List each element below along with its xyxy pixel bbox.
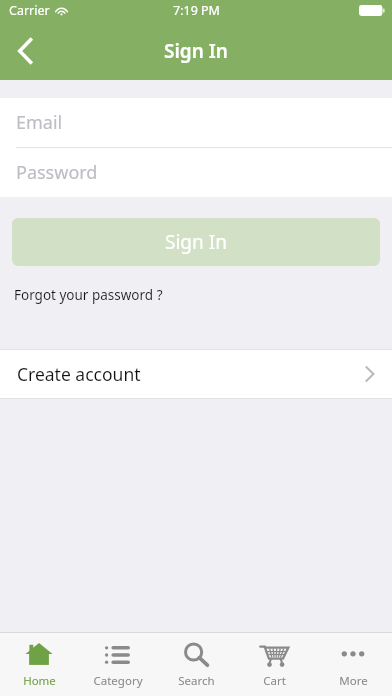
button[interactable]: More <box>314 633 392 696</box>
button[interactable]: Cart <box>235 633 313 696</box>
button[interactable]: Create account <box>0 350 392 398</box>
button[interactable]: Home <box>0 633 78 696</box>
button[interactable]: Back <box>0 21 50 80</box>
staticText: Carrier <box>9 2 50 19</box>
staticText: Category <box>93 673 143 689</box>
staticText: Email <box>16 110 63 135</box>
button[interactable]: Sign In <box>12 218 380 266</box>
staticText: Password <box>16 160 98 185</box>
staticText: More <box>339 673 368 689</box>
staticText: Search <box>178 673 215 689</box>
staticText: Sign In <box>164 38 228 64</box>
button[interactable]: Password <box>0 148 392 197</box>
button[interactable]: Search <box>157 633 235 696</box>
button[interactable]: Email <box>0 98 392 147</box>
staticText: Create account <box>17 362 141 386</box>
staticText: Forgot your password ? <box>14 286 163 304</box>
staticText: 7:19 PM <box>173 2 220 19</box>
button[interactable]: Category <box>79 633 157 696</box>
staticText: Home <box>23 673 56 689</box>
staticText: Cart <box>263 673 286 689</box>
staticText: Sign In <box>165 229 227 255</box>
